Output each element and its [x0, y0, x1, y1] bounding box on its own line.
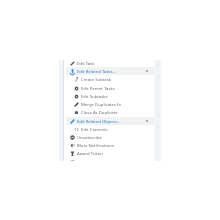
button[interactable]: Edit Task: [66, 59, 154, 67]
button[interactable]: Award Token: [66, 149, 154, 157]
button[interactable]: Edit Commits: [66, 125, 154, 133]
button[interactable]: Mute Notifications: [66, 141, 154, 149]
staticText: Mute Notifications: [77, 142, 114, 148]
button[interactable]: Edit Subtasks: [66, 92, 154, 100]
staticText: Close As Duplicate: [81, 109, 118, 115]
button[interactable]: Unsubscribe: [66, 133, 154, 141]
button[interactable]: Merge Duplicates In: [66, 100, 154, 108]
button[interactable]: Flag For Later: [66, 158, 154, 161]
staticText: Edit Commits: [81, 126, 108, 132]
button[interactable]: Edit Related Tasks...: [66, 67, 154, 75]
staticText: Edit Parent Tasks: [81, 85, 115, 91]
staticText: Edit Related Objects...: [77, 118, 121, 124]
staticText: Edit Task: [77, 60, 95, 66]
button[interactable]: Close As Duplicate: [66, 108, 154, 116]
staticText: Create Subtask: [81, 76, 111, 82]
button[interactable]: Edit Parent Tasks: [66, 84, 154, 92]
staticText: Edit Subtasks: [81, 93, 108, 99]
staticText: Edit Related Tasks...: [77, 68, 117, 74]
staticText: Unsubscribe: [77, 134, 102, 140]
button[interactable]: Create Subtask: [66, 75, 154, 83]
staticText: Award Token: [77, 150, 103, 156]
staticText: Merge Duplicates In: [81, 101, 122, 107]
button[interactable]: Edit Related Objects...: [66, 117, 154, 125]
